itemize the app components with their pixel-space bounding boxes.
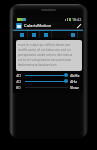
staticText: 4D — [16, 79, 22, 84]
button[interactable]: App icon — [16, 23, 22, 29]
button[interactable]: Edit — [75, 22, 82, 29]
button[interactable]: Tab 1 — [16, 31, 27, 38]
button[interactable]: Tab 2 — [28, 31, 39, 38]
staticText: CalarisMotion — [24, 23, 52, 29]
button[interactable]: sunt in culpa qui officia deserunt molli… — [16, 40, 82, 71]
staticText: Slow — [70, 85, 79, 90]
button[interactable]: 4D — [13, 72, 83, 78]
button[interactable]: 80 — [13, 84, 83, 90]
staticText: 18:42 — [72, 17, 82, 22]
staticText: 4kHz — [70, 73, 80, 78]
staticText: sunt in culpa qui officia deserunt molli… — [18, 42, 80, 67]
button[interactable]: Tab 3 — [40, 31, 51, 38]
button[interactable]: More options — [69, 31, 77, 38]
staticText: 80 — [16, 85, 21, 90]
staticText: 4Hz — [70, 79, 78, 84]
staticText: 4D — [16, 73, 22, 78]
button[interactable]: 4D — [13, 78, 83, 84]
